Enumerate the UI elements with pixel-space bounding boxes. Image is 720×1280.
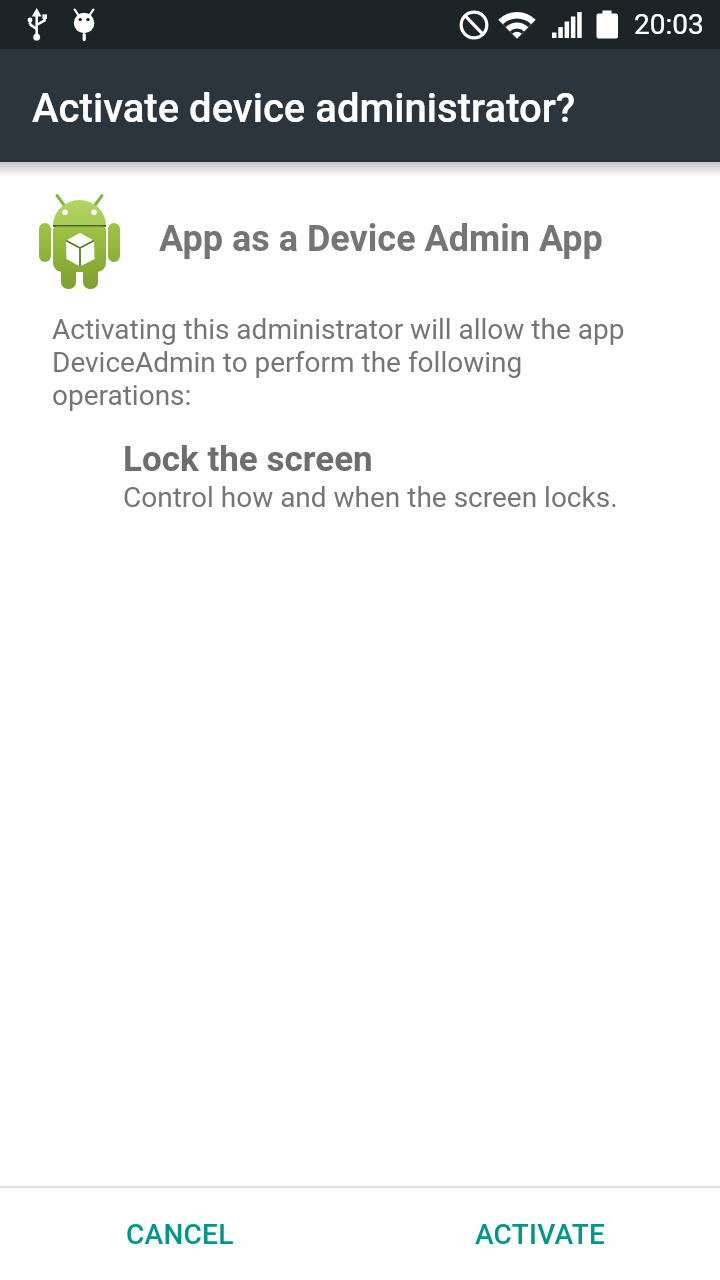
staticText: App as a Device Admin App (159, 218, 603, 260)
staticText: Lock the screen (123, 439, 373, 480)
staticText: Activate device administrator? (32, 85, 576, 132)
staticText: 20:03 (634, 8, 704, 41)
staticText: Control how and when the screen locks. (123, 481, 618, 514)
staticText: ACTIVATE (475, 1218, 606, 1251)
staticText: CANCEL (126, 1218, 234, 1251)
staticText: Activating this administrator will allow… (52, 313, 625, 412)
button[interactable]: ACTIVATE (360, 1188, 720, 1280)
button[interactable]: CANCEL (0, 1188, 360, 1280)
